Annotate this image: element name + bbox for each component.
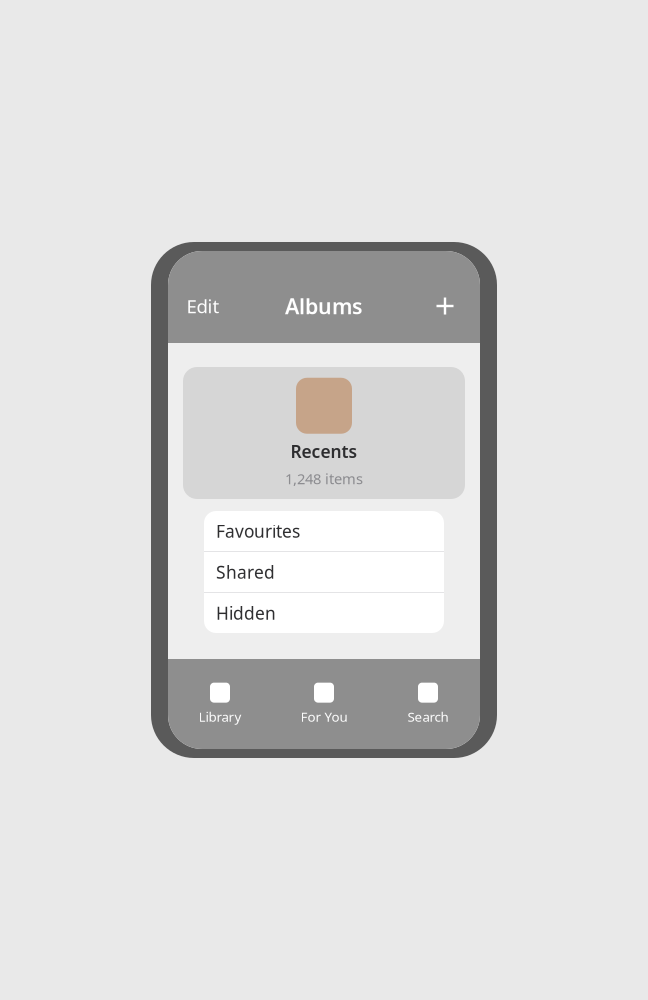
- button[interactable]: Add album: [420, 291, 470, 321]
- button[interactable]: Shared: [204, 552, 444, 592]
- staticText: 1,248 items: [285, 469, 363, 488]
- staticText: Hidden: [216, 601, 276, 624]
- button[interactable]: Recents: [183, 367, 465, 499]
- staticText: Search: [407, 708, 448, 725]
- button[interactable]: Edit: [178, 291, 228, 321]
- staticText: Recents: [290, 440, 357, 463]
- staticText: Albums: [285, 292, 363, 320]
- staticText: Shared: [216, 560, 275, 583]
- staticText: Edit: [186, 294, 219, 318]
- button[interactable]: Favourites: [204, 511, 444, 551]
- staticText: For You: [300, 708, 347, 725]
- button[interactable]: Library: [168, 659, 272, 749]
- staticText: Library: [198, 708, 241, 725]
- staticText: Favourites: [216, 519, 300, 542]
- button[interactable]: Hidden: [204, 593, 444, 633]
- button[interactable]: For You: [272, 659, 376, 749]
- button[interactable]: Search: [376, 659, 480, 749]
